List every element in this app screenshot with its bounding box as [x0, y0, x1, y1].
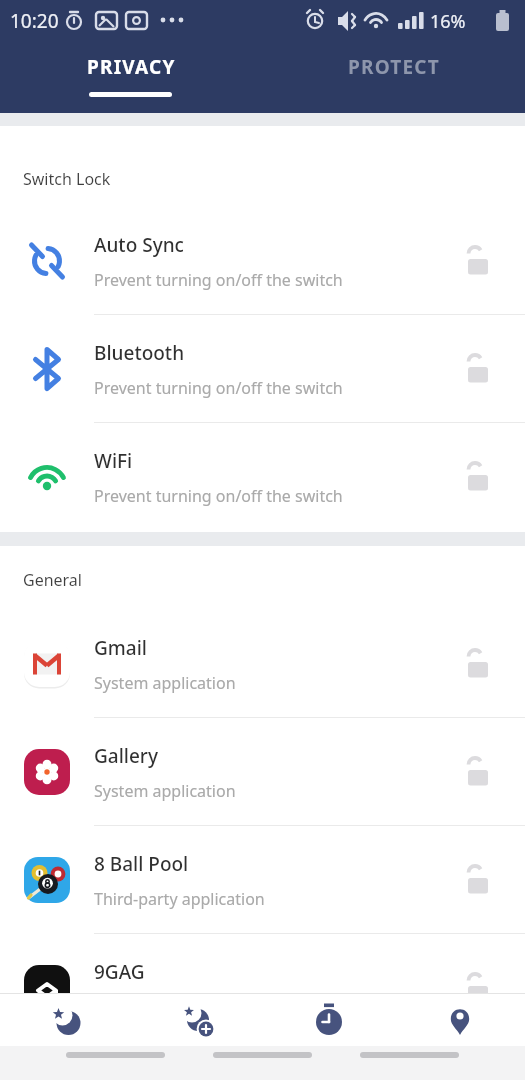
staticText: Prevent turning on/off the switch — [94, 485, 343, 507]
staticText: WiFi — [94, 448, 133, 474]
button[interactable] — [0, 994, 132, 1046]
button[interactable]: Gmail — [0, 610, 525, 718]
staticText: PRIVACY — [87, 54, 176, 80]
staticText: General — [23, 569, 82, 591]
staticText: System application — [94, 780, 236, 802]
staticText: 10:20 — [10, 8, 59, 34]
staticText: 9GAG — [94, 959, 145, 985]
staticText: System application — [94, 672, 236, 694]
button[interactable]: 8 Ball Pool — [0, 826, 525, 934]
staticText: Third-party application — [94, 888, 265, 910]
button[interactable]: WiFi — [0, 423, 525, 531]
staticText: 8 Ball Pool — [94, 851, 189, 877]
staticText: PROTECT — [348, 54, 440, 80]
button[interactable] — [394, 994, 525, 1046]
button[interactable]: PROTECT — [262, 40, 525, 113]
button[interactable]: 9GAG — [0, 934, 525, 993]
staticText: 16% — [430, 9, 466, 34]
button[interactable] — [263, 994, 394, 1046]
button[interactable] — [132, 994, 263, 1046]
button[interactable]: PRIVACY — [0, 40, 262, 113]
staticText: Switch Lock — [23, 168, 111, 190]
button[interactable]: Bluetooth — [0, 315, 525, 423]
staticText: Gallery — [94, 743, 158, 769]
staticText: Prevent turning on/off the switch — [94, 269, 343, 291]
staticText: Gmail — [94, 635, 147, 661]
staticText: Prevent turning on/off the switch — [94, 377, 343, 399]
button[interactable]: Gallery — [0, 718, 525, 826]
staticText: Auto Sync — [94, 232, 184, 258]
staticText: Bluetooth — [94, 340, 185, 366]
button[interactable]: Auto Sync — [0, 207, 525, 315]
